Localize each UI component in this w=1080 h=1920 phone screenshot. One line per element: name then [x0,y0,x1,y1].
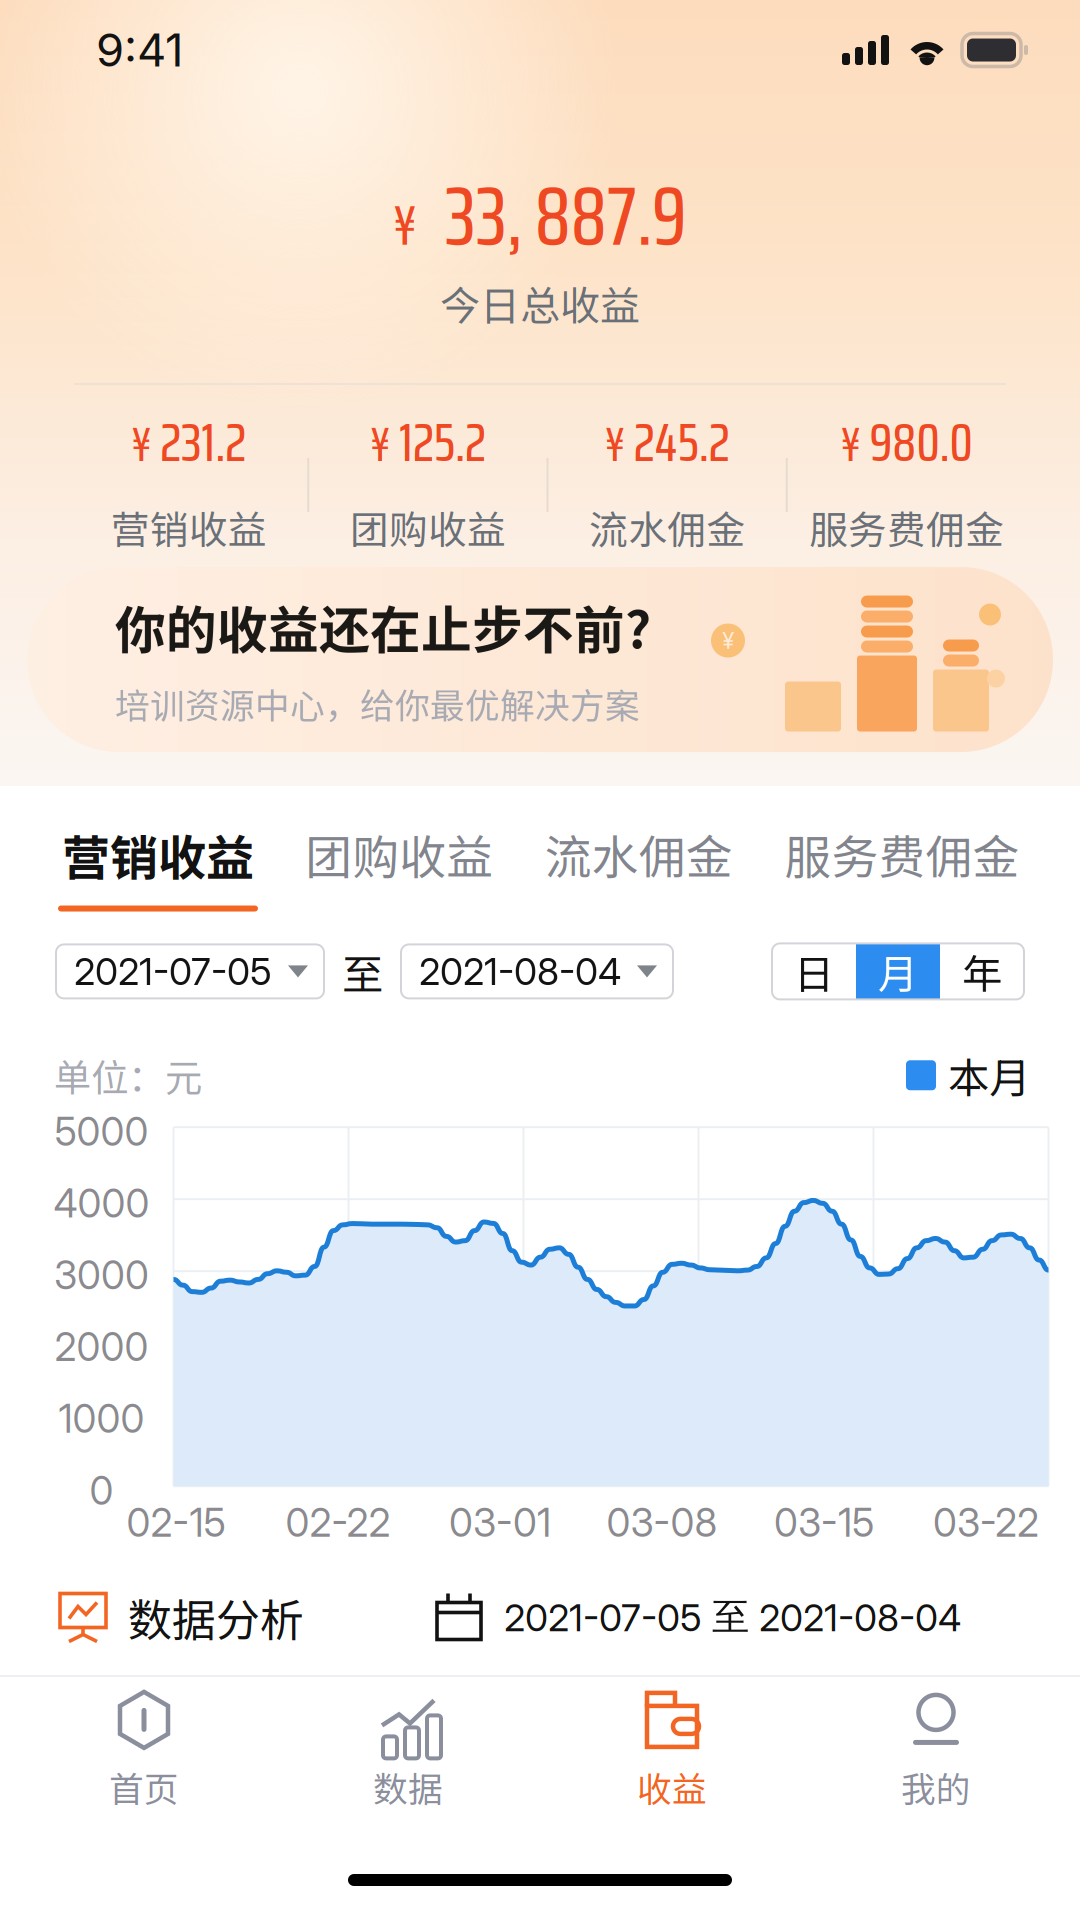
staticText: 你的收益还在止步不前? [115,591,651,662]
staticText: ¥ [840,407,860,482]
staticText: 我的 [901,1762,971,1812]
staticText: 245.2 [634,399,730,485]
button[interactable]: 年 [940,943,1024,999]
button[interactable]: 数据 [276,1691,540,1811]
staticText: 服务费佣金 [809,499,1004,555]
staticText: 团购收益 [305,820,493,888]
staticText: 9:41 [96,23,183,77]
staticText: 流水佣金 [545,820,733,888]
staticText: 至 [342,941,383,1001]
staticText: 月 [878,942,918,1000]
staticText: ¥ [605,407,625,482]
staticText: 2021-07-05 至 2021-08-04 [504,1593,961,1640]
staticText: 2021-08-04 [419,949,621,994]
staticText: 03-08 [606,1499,717,1546]
staticText: 1000 [58,1395,144,1442]
staticText: 培训资源中心，给你最优解决方案 [115,678,640,728]
staticText: 数据 [373,1762,443,1812]
staticText: ¥ [722,627,734,654]
button[interactable]: 营销收益 [60,820,256,911]
staticText: 营销收益 [62,820,254,889]
staticText: 首页 [109,1762,179,1812]
button[interactable]: 日 [772,943,856,999]
staticText: 5000 [54,1108,148,1155]
button[interactable]: 收益 [540,1691,804,1811]
staticText: 33, 887.9 [445,151,687,281]
staticText: 4000 [53,1180,149,1227]
staticText: 02-15 [126,1499,225,1546]
staticText: 0 [89,1467,113,1514]
staticText: 团购收益 [350,499,506,555]
button[interactable]: 我的 [804,1691,1068,1811]
staticText: 年 [962,942,1002,1000]
staticText: ¥ [131,407,151,482]
button[interactable]: 服务费佣金 [782,820,1022,910]
staticText: 数据分析 [128,1585,304,1649]
staticText: 03-01 [449,1499,551,1546]
staticText: 231.2 [160,399,246,485]
staticText: 3000 [54,1252,149,1299]
staticText: 营销收益 [111,499,267,555]
button[interactable]: 2021-07-05 [56,944,324,998]
staticText: 980.0 [869,399,972,485]
staticText: 125.2 [399,399,486,485]
button[interactable]: 2021-08-04 [401,944,673,998]
staticText: 03-15 [774,1499,874,1546]
staticText: 2021-07-05 [74,949,272,994]
staticText: ¥ [370,407,390,482]
button[interactable]: ¥ [27,567,1053,752]
staticText: 02-22 [285,1499,390,1546]
button[interactable]: 团购收益 [303,820,495,910]
staticText: 本月 [948,1045,1030,1105]
staticText: 收益 [637,1762,707,1812]
staticText: ¥ [393,181,417,269]
staticText: 服务费佣金 [784,820,1019,888]
button[interactable]: 月 [856,943,940,999]
staticText: 今日总收益 [440,274,640,332]
staticText: 流水佣金 [589,499,745,555]
staticText: 03-22 [933,1499,1039,1546]
button[interactable]: 流水佣金 [543,820,735,910]
button[interactable]: 数据分析 [58,1585,304,1649]
staticText: 日 [794,942,834,1000]
staticText: 单位：元 [54,1048,202,1102]
staticText: 2000 [54,1324,148,1370]
button[interactable]: 首页 [12,1691,276,1811]
